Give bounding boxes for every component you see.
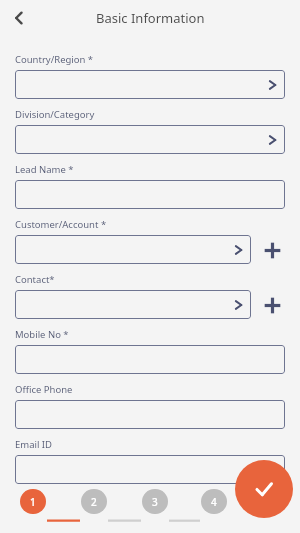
staticText: Contact* (15, 273, 55, 286)
button[interactable]: Division/Category (15, 125, 285, 154)
button[interactable]: Office Phone (15, 400, 285, 429)
button[interactable]: Mobile No * (15, 345, 285, 374)
staticText: Office Phone (15, 383, 73, 396)
staticText: 2 (91, 495, 97, 509)
button[interactable]: 4 (201, 489, 227, 514)
staticText: 1 (30, 495, 36, 509)
staticText: Mobile No * (15, 328, 69, 341)
button[interactable]: Email ID (15, 455, 285, 484)
staticText: Lead Name * (15, 163, 74, 176)
staticText: Country/Region * (15, 53, 94, 66)
staticText: Email ID (15, 438, 53, 451)
staticText: Basic Information (96, 9, 205, 27)
button[interactable]: Contact* (15, 290, 251, 319)
staticText: Division/Category (15, 108, 95, 121)
button[interactable]: 2 (81, 489, 107, 514)
staticText: 3 (152, 495, 158, 509)
button[interactable]: 3 (142, 489, 168, 514)
button[interactable]: Submit (235, 460, 293, 518)
button[interactable]: Add Contact* (259, 292, 285, 318)
button[interactable]: Customer/Account * (15, 235, 251, 264)
button[interactable]: Add Customer/Account * (259, 237, 285, 263)
button[interactable]: 1 (20, 489, 46, 514)
button[interactable]: Lead Name * (15, 180, 285, 209)
staticText: Customer/Account * (15, 218, 107, 231)
button[interactable]: Back (6, 5, 32, 31)
button[interactable]: Country/Region * (15, 70, 285, 99)
staticText: 4 (211, 495, 217, 509)
